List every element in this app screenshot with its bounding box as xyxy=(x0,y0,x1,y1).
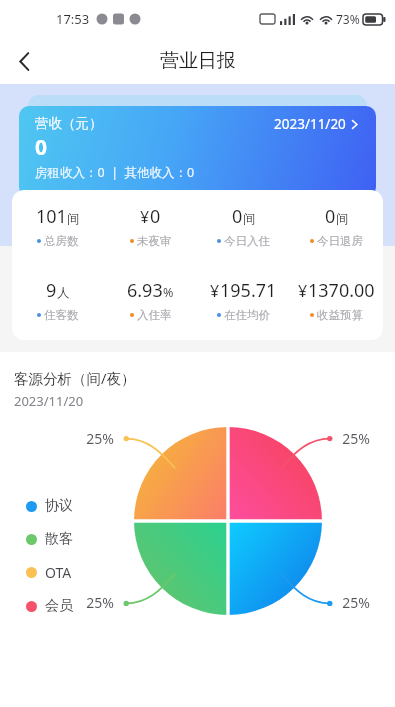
staticText: 0 xyxy=(325,204,336,229)
button[interactable]: 散客 xyxy=(26,530,73,548)
staticText: 101 xyxy=(36,204,67,229)
button[interactable]: 6.93 xyxy=(104,278,197,322)
staticText: 2023/11/20 xyxy=(274,115,346,133)
staticText: 住客数 xyxy=(44,308,79,322)
staticText: 9 xyxy=(46,278,57,303)
button[interactable]: ¥ xyxy=(104,204,197,248)
staticText: 195.71 xyxy=(220,278,277,303)
staticText: 入住率 xyxy=(137,308,172,322)
staticText: 在住均价 xyxy=(224,308,270,322)
button[interactable]: OTA xyxy=(26,563,72,582)
staticText: 今日入住 xyxy=(224,234,270,248)
button[interactable]: ¥ xyxy=(197,278,290,322)
staticText: 房租收入：0 | 其他收入：0 xyxy=(35,164,195,181)
staticText: 人 xyxy=(57,285,70,301)
button[interactable]: 会员 xyxy=(26,597,73,615)
staticText: 25% xyxy=(342,593,370,612)
staticText: 73% xyxy=(336,11,360,27)
staticText: 会员 xyxy=(45,597,73,615)
staticText: 25% xyxy=(342,429,370,448)
staticText: 间 xyxy=(67,211,80,227)
button[interactable]: ¥ xyxy=(290,278,383,322)
button[interactable]: 9 xyxy=(12,278,104,322)
staticText: 营业日报 xyxy=(160,49,236,73)
staticText: 25% xyxy=(86,593,114,612)
staticText: 总房数 xyxy=(44,234,79,248)
staticText: 协议 xyxy=(45,497,73,515)
staticText: 间 xyxy=(336,211,349,227)
button[interactable]: 101 xyxy=(12,204,104,248)
staticText: 25% xyxy=(86,429,114,448)
staticText: ¥ xyxy=(298,280,308,302)
staticText: 收益预算 xyxy=(317,308,363,322)
button[interactable]: 协议 xyxy=(26,497,73,515)
staticText: ¥ xyxy=(210,280,220,302)
staticText: 0 xyxy=(35,133,48,162)
button[interactable]: 营收（元） xyxy=(19,106,376,197)
staticText: OTA xyxy=(45,563,72,582)
staticText: 客源分析（间/夜） xyxy=(14,368,136,388)
button[interactable]: 0 xyxy=(290,204,383,248)
staticText: % xyxy=(163,284,174,301)
staticText: 2023/11/20 xyxy=(14,392,84,410)
button[interactable]: Back xyxy=(3,40,45,82)
staticText: 17:53 xyxy=(56,10,90,28)
staticText: ¥ xyxy=(140,206,150,228)
staticText: 间 xyxy=(243,211,256,227)
staticText: 0 xyxy=(150,204,161,229)
button[interactable]: 2023/11/20 xyxy=(274,115,360,133)
staticText: 散客 xyxy=(45,530,73,548)
staticText: 未夜审 xyxy=(137,234,172,248)
staticText: 6.93 xyxy=(127,278,163,303)
staticText: 今日退房 xyxy=(317,234,363,248)
staticText: 营收（元） xyxy=(35,115,103,132)
staticText: 0 xyxy=(232,204,243,229)
staticText: 1370.00 xyxy=(308,278,375,303)
button[interactable]: 0 xyxy=(197,204,290,248)
